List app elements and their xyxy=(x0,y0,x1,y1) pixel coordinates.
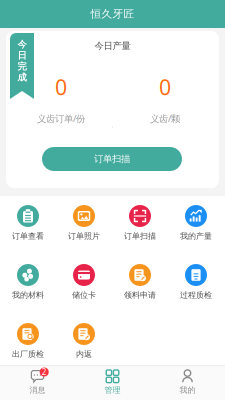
staticText: 我的材料 xyxy=(12,290,44,300)
button[interactable]: 订单扫描 xyxy=(42,147,182,171)
staticText: 今 xyxy=(17,39,26,50)
staticText: 0 xyxy=(55,73,67,101)
staticText: 订单扫描 xyxy=(124,231,156,241)
staticText: 订单查看 xyxy=(12,231,44,241)
staticText: 我的 xyxy=(179,385,195,395)
staticText: 领料申请 xyxy=(124,290,156,300)
staticText: 我的产量 xyxy=(180,231,212,241)
staticText: 成 xyxy=(17,72,26,83)
staticText: 储位卡 xyxy=(72,290,96,300)
staticText: 出厂质检 xyxy=(12,349,44,359)
button[interactable]: 订单扫描 xyxy=(112,205,168,242)
staticText: 内返 xyxy=(76,349,92,359)
staticText: 义齿/颗 xyxy=(150,112,180,125)
staticText: 消息 xyxy=(29,385,45,395)
button[interactable]: 2 xyxy=(0,370,75,398)
button[interactable]: 管理 xyxy=(75,370,150,398)
staticText: 订单扫描 xyxy=(94,153,130,165)
staticText: 管理 xyxy=(104,385,120,395)
button[interactable]: 内返 xyxy=(56,323,112,360)
button[interactable]: 我的材料 xyxy=(0,264,56,301)
staticText: 恒久牙匠 xyxy=(90,7,134,20)
staticText: 2 xyxy=(42,367,47,377)
staticText: 订单照片 xyxy=(68,231,100,241)
button[interactable]: 出厂质检 xyxy=(0,323,56,360)
staticText: 0 xyxy=(159,73,171,101)
button[interactable]: 我的 xyxy=(150,370,225,398)
staticText: 义齿订单/份 xyxy=(37,112,85,125)
button[interactable]: 订单照片 xyxy=(56,205,112,242)
staticText: 日 xyxy=(17,50,26,61)
button[interactable]: 我的产量 xyxy=(168,205,224,242)
button[interactable]: 订单查看 xyxy=(0,205,56,242)
staticText: 完 xyxy=(17,61,26,72)
button[interactable]: 储位卡 xyxy=(56,264,112,301)
staticText: 今日产量 xyxy=(94,40,130,52)
button[interactable]: 领料申请 xyxy=(112,264,168,301)
staticText: 过程质检 xyxy=(180,290,212,300)
button[interactable]: 过程质检 xyxy=(168,264,224,301)
